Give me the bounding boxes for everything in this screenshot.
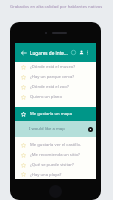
staticText: ¿Hay un parque cerca?	[30, 74, 75, 80]
button[interactable]: ¿Me recomienda un sitio?	[15, 150, 96, 160]
staticText: Me gustaría un mapa	[30, 111, 72, 117]
staticText: Grabados en alta calidad por hablantes n…	[10, 4, 103, 10]
button[interactable]: More options	[83, 48, 92, 57]
button[interactable]: ¿Qué se puede visitar?	[15, 160, 96, 170]
button[interactable]: I would like a map	[15, 121, 96, 137]
staticText: Me gustaría ver el castillo.	[30, 142, 82, 148]
button[interactable]: Play	[88, 127, 93, 132]
button[interactable]: Account	[77, 48, 86, 57]
button[interactable]: ¿Dónde está el zoo?	[15, 82, 96, 92]
button[interactable]: ¿Dónde está el museo?	[15, 62, 96, 72]
button[interactable]: Me gustaría un mapa	[15, 107, 96, 121]
button[interactable]: Info	[69, 48, 78, 57]
button[interactable]: ¿Hay un parque cerca?	[15, 72, 96, 82]
staticText: Lugares de inter...	[30, 50, 68, 56]
staticText: I would like a map	[29, 126, 65, 132]
staticText: ¿Qué se puede visitar?	[30, 162, 74, 168]
staticText: Quiero un plano	[30, 94, 62, 100]
staticText: ¿Me recomienda un sitio?	[30, 152, 80, 158]
button[interactable]: Back	[19, 48, 28, 57]
staticText: ¿Dónde está el zoo?	[30, 84, 69, 90]
staticText: ¿Hay una playa?	[30, 172, 62, 178]
staticText: ¿Dónde está el museo?	[30, 64, 76, 70]
button[interactable]: ¿Hay una playa?	[15, 170, 96, 179]
button[interactable]: Me gustaría ver el castillo.	[15, 140, 96, 150]
button[interactable]: Quiero un plano	[15, 92, 96, 102]
